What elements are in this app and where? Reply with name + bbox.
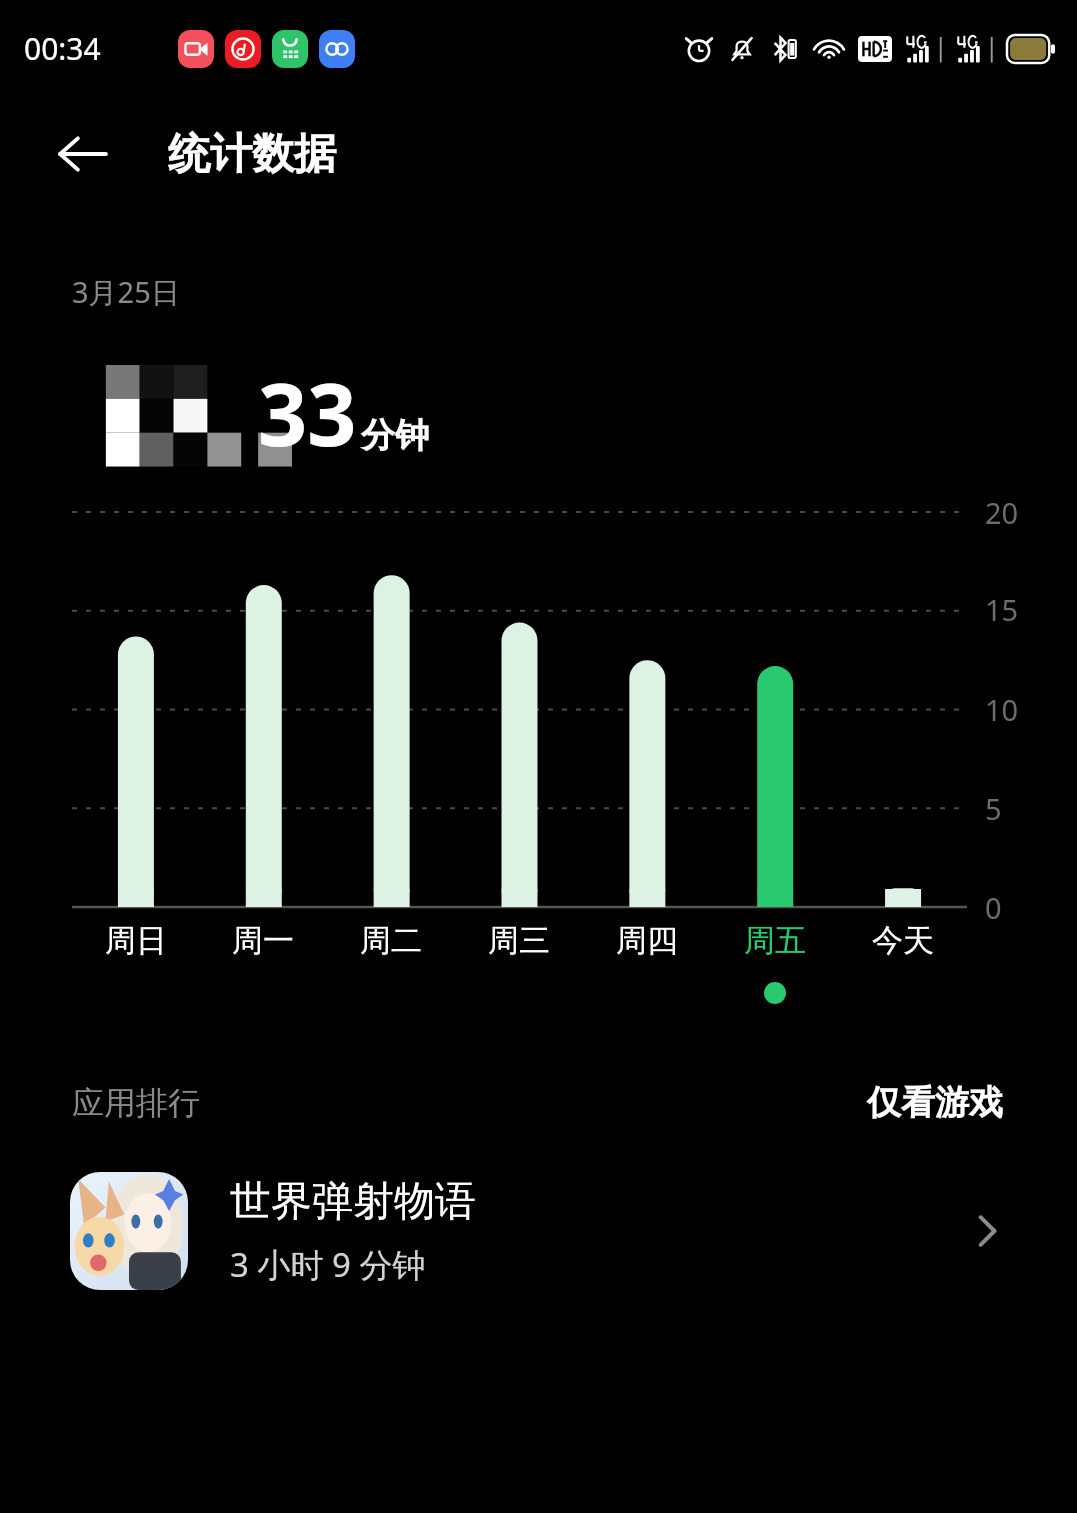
staticText: 3 小时 9 分钟 <box>230 1242 426 1287</box>
staticText: 0 <box>985 888 1002 927</box>
staticText: 周四 <box>616 921 678 960</box>
staticText: 世界弹射物语 <box>230 1176 476 1228</box>
staticText: 15 <box>985 590 1019 629</box>
staticText: 统计数据 <box>168 128 336 181</box>
button[interactable]: 周日 <box>72 921 199 960</box>
staticText: 33 <box>258 354 357 471</box>
staticText: 周三 <box>488 921 550 960</box>
staticText: 今天 <box>872 921 934 960</box>
staticText: 应用排行 <box>72 1083 200 1123</box>
other: Details <box>959 1202 1017 1260</box>
button[interactable]: 今天 <box>839 921 967 960</box>
staticText: 周一 <box>232 921 294 960</box>
staticText: 3月25日 <box>72 272 180 312</box>
staticText: 20 <box>985 493 1019 532</box>
button[interactable]: 周三 <box>455 921 583 960</box>
button[interactable]: 周二 <box>327 921 455 960</box>
button[interactable]: 周五 <box>711 921 839 1004</box>
staticText: 分钟 <box>361 414 429 457</box>
button[interactable]: 世界弹射物语 <box>0 1166 1077 1296</box>
button[interactable]: Back <box>46 118 118 190</box>
staticText: 周日 <box>105 921 167 960</box>
staticText: 周二 <box>360 921 422 960</box>
button[interactable]: 周一 <box>199 921 327 960</box>
button[interactable]: 仅看游戏 <box>863 1077 1007 1128</box>
button[interactable]: 周四 <box>583 921 711 960</box>
staticText: 5 <box>985 789 1002 828</box>
staticText: 周五 <box>744 921 806 960</box>
staticText: 10 <box>985 690 1019 729</box>
staticText: 仅看游戏 <box>867 1081 1003 1124</box>
staticText: 00:34 <box>24 28 101 69</box>
